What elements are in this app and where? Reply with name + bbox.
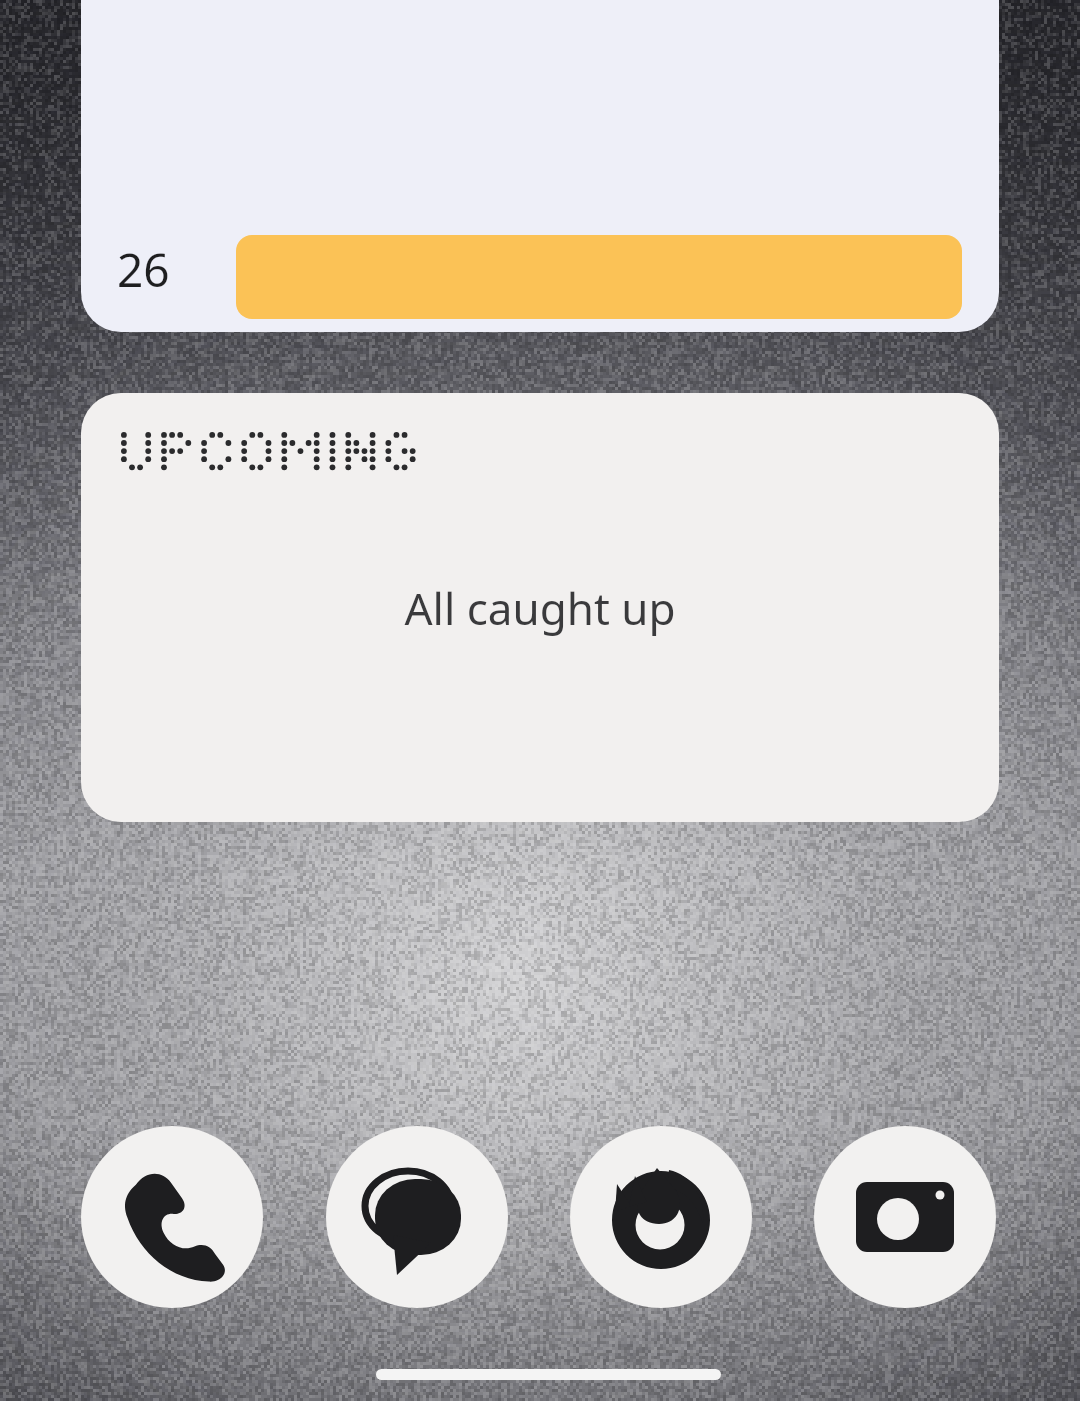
staticText: 26 [117, 238, 170, 301]
button[interactable]: 26 [81, 0, 999, 332]
button[interactable]: Messages [326, 1126, 508, 1308]
button[interactable]: All caught up [81, 393, 999, 822]
staticText: All caught up [404, 578, 676, 638]
button[interactable]: Firefox [570, 1126, 752, 1308]
button[interactable]: Camera [814, 1126, 996, 1308]
button[interactable]: Phone [81, 1126, 263, 1308]
